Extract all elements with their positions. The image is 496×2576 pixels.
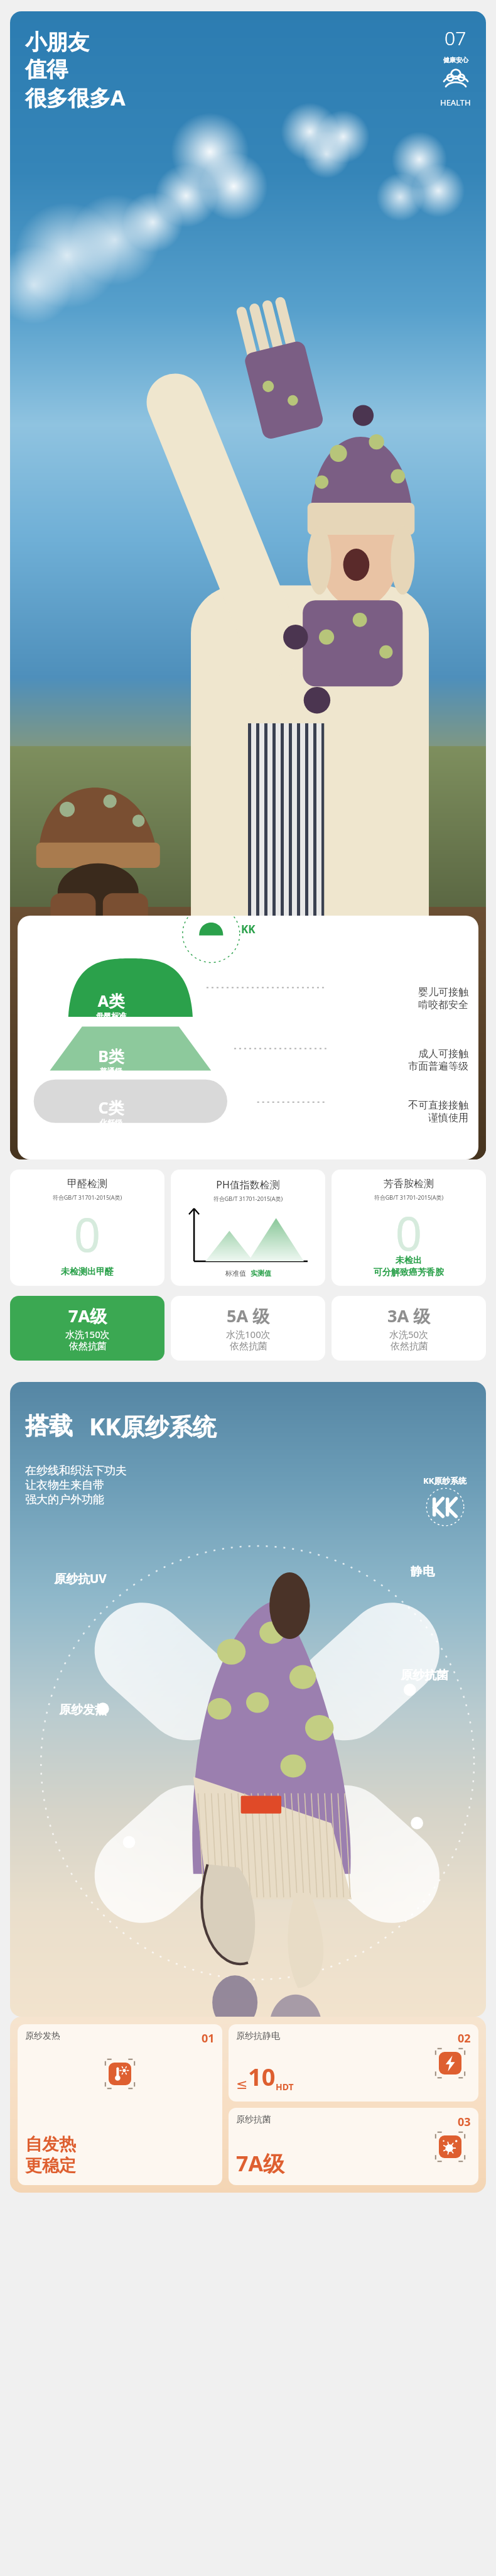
staticText: 更稳定: [25, 2155, 76, 2176]
staticText: 静电: [411, 1564, 434, 1579]
staticText: C类: [78, 1097, 144, 1118]
staticText: 3A 级: [387, 1304, 431, 1327]
staticText: 在纱线和织法下功夫: [25, 1464, 127, 1478]
staticText: 谨慎使用: [428, 1112, 468, 1124]
staticText: 婴儿可接触: [418, 986, 468, 999]
staticText: 依然抗菌: [391, 1340, 428, 1352]
staticText: A类: [78, 990, 144, 1011]
staticText: 标准值: [225, 1269, 246, 1278]
button[interactable]: KK: [18, 916, 478, 1159]
button[interactable]: 3A 级: [332, 1296, 486, 1361]
staticText: 0: [13, 1202, 161, 1266]
staticText: 不可直接接触: [408, 1099, 468, 1112]
staticText: 依然抗菌: [230, 1340, 267, 1352]
staticText: 很多很多A: [25, 83, 126, 112]
staticText: 未检出 可分解致癌芳香胺: [335, 1255, 483, 1278]
staticText: 健康安心: [443, 56, 468, 64]
staticText: 原纱发热: [59, 1702, 107, 1718]
staticText: 原纱抗菌: [401, 1668, 448, 1683]
button[interactable]: PH值指数检测: [171, 1170, 325, 1286]
staticText: 原纱抗静电: [236, 2031, 280, 2042]
button[interactable]: KK原纱系统: [423, 1475, 467, 1526]
staticText: 小朋友: [25, 29, 89, 56]
staticText: 强大的户外功能: [25, 1493, 104, 1507]
staticText: 水洗50次: [389, 1328, 429, 1340]
button[interactable]: 原纱发热: [18, 2024, 222, 2185]
staticText: HDT: [276, 2081, 294, 2093]
staticText: PH值指数检测: [174, 1178, 322, 1192]
staticText: 成人可接触: [418, 1048, 468, 1060]
staticText: 符合GB/T 31701-2015(A类): [174, 1195, 322, 1202]
staticText: 甲醛检测: [13, 1178, 161, 1190]
staticText: 10: [248, 2060, 276, 2093]
staticText: KK原纱系统: [89, 1410, 217, 1442]
staticText: 7A级: [68, 1304, 107, 1327]
button[interactable]: 原纱抗静电: [229, 2024, 478, 2102]
staticText: 水洗100次: [226, 1328, 271, 1340]
staticText: 化纤级: [78, 1118, 144, 1127]
staticText: 03: [458, 2114, 471, 2130]
staticText: 让衣物生来自带: [25, 1478, 104, 1493]
staticText: 01: [202, 2031, 215, 2046]
staticText: 符合GB/T 31701-2015(A类): [13, 1193, 161, 1201]
staticText: 啃咬都安全: [418, 999, 468, 1011]
staticText: 0: [335, 1201, 483, 1255]
staticText: HEALTH: [440, 97, 471, 108]
staticText: ≤: [236, 2076, 248, 2093]
staticText: 水洗150次: [65, 1328, 110, 1340]
staticText: 原纱发热: [25, 2031, 60, 2042]
button[interactable]: 7A级: [10, 1296, 164, 1361]
staticText: 实测值: [251, 1269, 271, 1278]
staticText: 母婴标准: [78, 1011, 144, 1021]
button[interactable]: 5A 级: [171, 1296, 325, 1361]
staticText: 符合GB/T 31701-2015(A类): [335, 1193, 483, 1201]
staticText: 自发热: [25, 2134, 76, 2155]
staticText: 依然抗菌: [69, 1340, 107, 1352]
button[interactable]: 芳香胺检测: [332, 1170, 486, 1286]
staticText: 未检测出甲醛: [13, 1266, 161, 1278]
staticText: 值得: [25, 56, 68, 83]
staticText: 5A 级: [227, 1304, 270, 1327]
staticText: 原纱抗UV: [54, 1570, 107, 1587]
staticText: KK: [241, 922, 256, 936]
staticText: 02: [458, 2031, 471, 2046]
staticText: 原纱抗菌: [236, 2114, 271, 2125]
staticText: 芳香胺检测: [335, 1178, 483, 1190]
staticText: 市面普遍等级: [408, 1060, 468, 1073]
button[interactable]: 健康安心 HEALTH: [440, 25, 471, 108]
staticText: B类: [78, 1045, 144, 1066]
staticText: KK原纱系统: [423, 1475, 467, 1486]
button[interactable]: 原纱抗菌: [229, 2108, 478, 2185]
staticText: 07: [445, 25, 466, 51]
staticText: 7A级: [236, 2149, 284, 2178]
staticText: 普通级: [78, 1066, 144, 1076]
button[interactable]: 甲醛检测: [10, 1170, 164, 1286]
staticText: 搭载: [25, 1411, 73, 1441]
